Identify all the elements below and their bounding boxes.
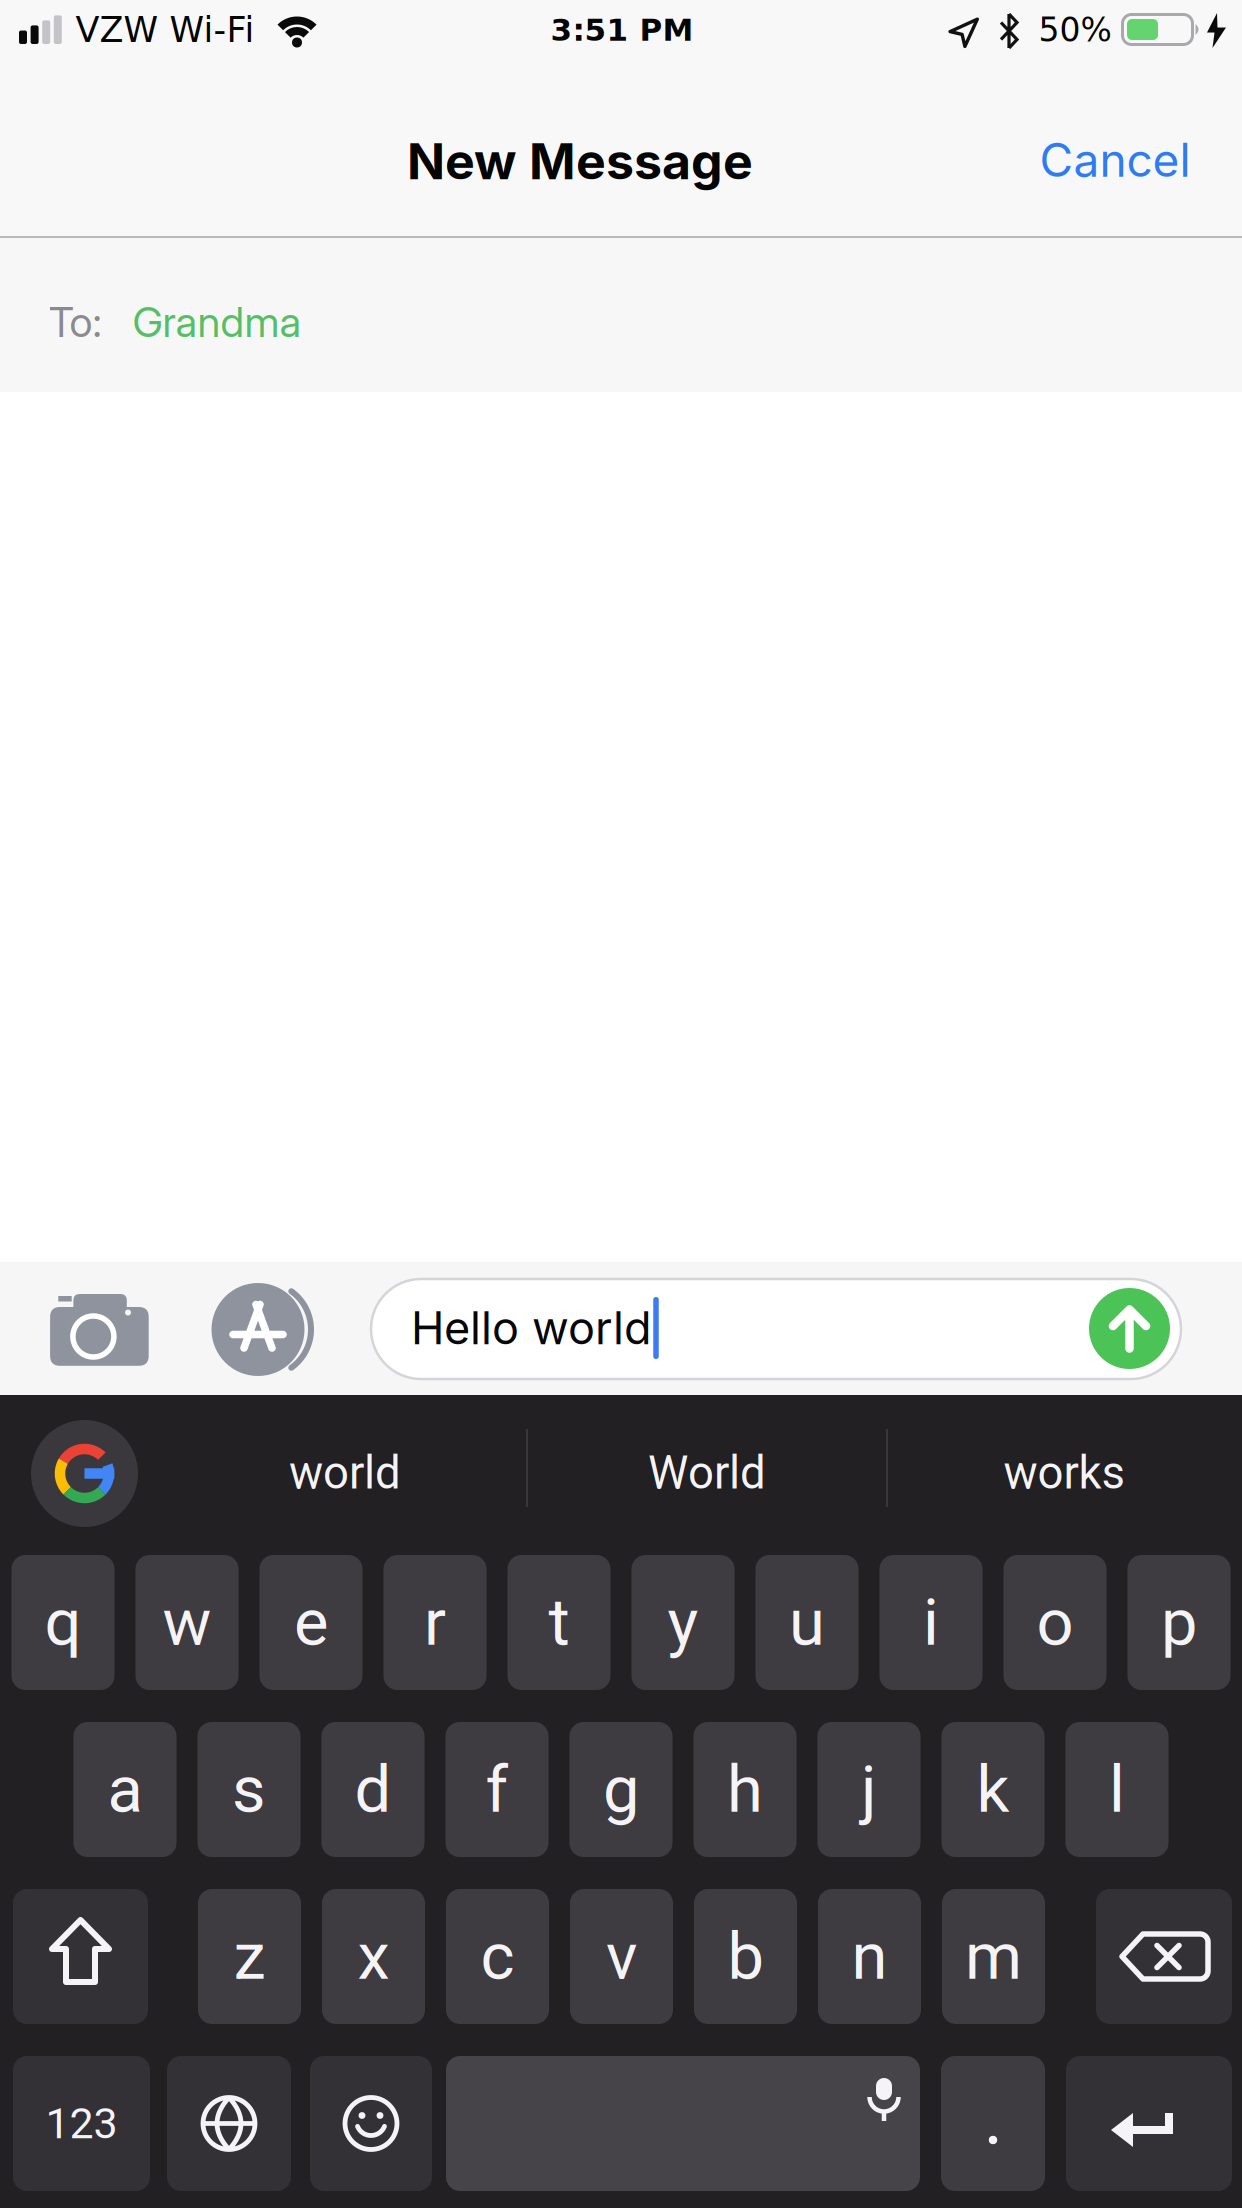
- staticText: q: [44, 1584, 81, 1661]
- button[interactable]: g: [569, 1722, 672, 1857]
- button[interactable]: Delete: [1096, 1889, 1232, 2024]
- staticText: g: [603, 1751, 639, 1828]
- staticText: o: [1036, 1584, 1073, 1661]
- button[interactable]: Message: [371, 1279, 1181, 1379]
- button[interactable]: j: [817, 1722, 920, 1857]
- button[interactable]: i: [879, 1555, 982, 1690]
- staticText: v: [606, 1918, 637, 1995]
- staticText: c: [480, 1918, 514, 1995]
- button[interactable]: 123: [13, 2056, 150, 2191]
- staticText: f: [485, 1751, 508, 1828]
- staticText: 3:51 PM: [550, 12, 693, 48]
- staticText: w: [162, 1584, 211, 1661]
- staticText: l: [1109, 1751, 1125, 1828]
- button[interactable]: Google: [29, 1418, 139, 1528]
- staticText: i: [923, 1584, 939, 1661]
- button[interactable]: t: [507, 1555, 610, 1690]
- staticText: p: [1161, 1584, 1197, 1661]
- staticText: n: [851, 1918, 887, 1995]
- staticText: j: [861, 1751, 877, 1828]
- button[interactable]: Shift: [13, 1889, 148, 2024]
- staticText: m: [965, 1918, 1022, 1995]
- button[interactable]: k: [941, 1722, 1044, 1857]
- staticText: x: [357, 1918, 389, 1995]
- button[interactable]: m: [942, 1889, 1045, 2024]
- button[interactable]: b: [694, 1889, 797, 2024]
- button[interactable]: Send: [1088, 1287, 1170, 1369]
- staticText: 50%: [1038, 11, 1111, 49]
- staticText: s: [232, 1751, 266, 1828]
- button[interactable]: h: [693, 1722, 796, 1857]
- staticText: r: [424, 1584, 446, 1661]
- staticText: New Message: [407, 131, 753, 191]
- staticText: To:: [48, 297, 101, 347]
- button[interactable]: o: [1003, 1555, 1106, 1690]
- button[interactable]: y: [631, 1555, 734, 1690]
- staticText: VZW Wi-Fi: [75, 10, 254, 50]
- button[interactable]: d: [321, 1722, 424, 1857]
- staticText: 123: [45, 2098, 117, 2149]
- staticText: Grandma: [132, 297, 301, 347]
- staticText: Hello world: [411, 1301, 652, 1355]
- button[interactable]: Emoji: [310, 2056, 432, 2191]
- button[interactable]: Space: [446, 2056, 920, 2191]
- button[interactable]: r: [383, 1555, 486, 1690]
- button[interactable]: c: [446, 1889, 549, 2024]
- button[interactable]: Period: [941, 2056, 1045, 2191]
- button[interactable]: Camera: [44, 1278, 154, 1378]
- staticText: u: [789, 1584, 825, 1661]
- staticText: k: [976, 1751, 1009, 1828]
- staticText: b: [727, 1918, 763, 1995]
- button[interactable]: v: [570, 1889, 673, 2024]
- button[interactable]: Return: [1066, 2056, 1232, 2191]
- staticText: y: [667, 1584, 698, 1661]
- button[interactable]: p: [1127, 1555, 1230, 1690]
- button[interactable]: l: [1065, 1722, 1168, 1857]
- staticText: h: [727, 1751, 763, 1828]
- staticText: Cancel: [1039, 132, 1190, 188]
- button[interactable]: a: [73, 1722, 176, 1857]
- button[interactable]: e: [259, 1555, 362, 1690]
- button[interactable]: world: [160, 1413, 530, 1533]
- button[interactable]: u: [755, 1555, 858, 1690]
- staticText: t: [548, 1584, 569, 1661]
- button[interactable]: w: [135, 1555, 238, 1690]
- staticText: a: [107, 1751, 142, 1828]
- button[interactable]: works: [888, 1413, 1240, 1533]
- button[interactable]: x: [322, 1889, 425, 2024]
- button[interactable]: Grandma: [77, 272, 357, 372]
- staticText: works: [1003, 1446, 1124, 1500]
- button[interactable]: f: [445, 1722, 548, 1857]
- button[interactable]: q: [11, 1555, 114, 1690]
- staticText: z: [233, 1918, 265, 1995]
- button[interactable]: Apps: [200, 1277, 320, 1381]
- button[interactable]: n: [818, 1889, 921, 2024]
- button[interactable]: s: [197, 1722, 300, 1857]
- staticText: e: [294, 1584, 328, 1661]
- button[interactable]: Next keyboard: [167, 2056, 291, 2191]
- button[interactable]: World: [529, 1413, 885, 1533]
- button[interactable]: z: [198, 1889, 301, 2024]
- staticText: world: [289, 1446, 401, 1500]
- staticText: World: [648, 1446, 766, 1500]
- button[interactable]: Cancel: [1015, 115, 1215, 205]
- staticText: d: [354, 1751, 391, 1828]
